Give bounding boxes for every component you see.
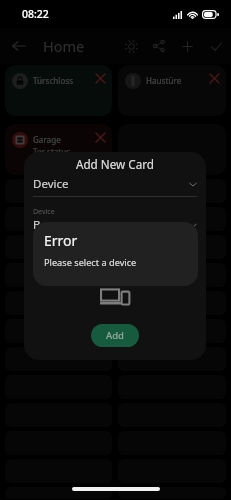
button[interactable]: Add (173, 28, 202, 64)
button[interactable]: Confirm (202, 28, 231, 64)
staticText: Device (33, 207, 55, 217)
button[interactable]: Haustüre (118, 65, 226, 116)
staticText: 08:22 (22, 7, 49, 21)
staticText: Add (106, 329, 125, 342)
staticText: Home (43, 36, 85, 56)
staticText: Türschloss (33, 75, 74, 86)
staticText: Please select a device (44, 256, 137, 269)
button[interactable]: Remove card (208, 72, 220, 84)
staticText: B (33, 217, 41, 233)
staticText: Tor status (33, 146, 70, 157)
button[interactable]: Back (5, 32, 33, 60)
button[interactable]: Share (144, 28, 173, 64)
button[interactable]: Garage (5, 124, 112, 175)
button[interactable]: Brightness (118, 28, 144, 64)
staticText: Device (33, 176, 69, 192)
button[interactable]: Add (91, 324, 139, 347)
button[interactable]: Remove card (94, 131, 106, 143)
button[interactable]: Türschloss (5, 65, 112, 116)
staticText: Add New Card (24, 156, 206, 172)
staticText: Haustüre (146, 75, 182, 86)
staticText: Error (44, 231, 78, 250)
button[interactable]: Remove card (94, 72, 106, 84)
staticText: Garage (33, 134, 61, 145)
